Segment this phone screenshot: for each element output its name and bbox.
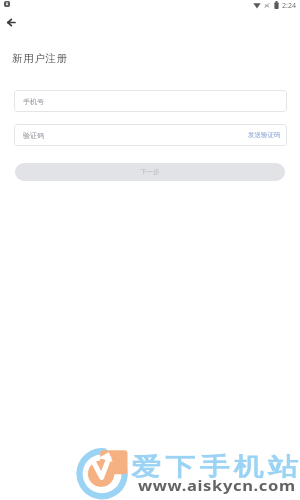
button[interactable]: 手机号 <box>14 90 287 112</box>
staticText: 发送验证码 <box>248 131 281 139</box>
staticText: 手机号 <box>23 97 44 106</box>
button[interactable]: 发送验证码 <box>238 124 287 146</box>
button[interactable]: 验证码 <box>14 124 287 146</box>
staticText: www.aiskycn.com <box>138 476 297 495</box>
staticText: 下一步 <box>140 168 160 176</box>
staticText: 爱下手机站 <box>131 452 300 480</box>
button[interactable]: 下一步 <box>15 163 285 181</box>
button[interactable]: Back <box>0 11 22 33</box>
staticText: 验证码 <box>23 131 44 140</box>
staticText: 2:24 <box>282 1 296 11</box>
staticText: 新用户注册 <box>12 52 68 65</box>
